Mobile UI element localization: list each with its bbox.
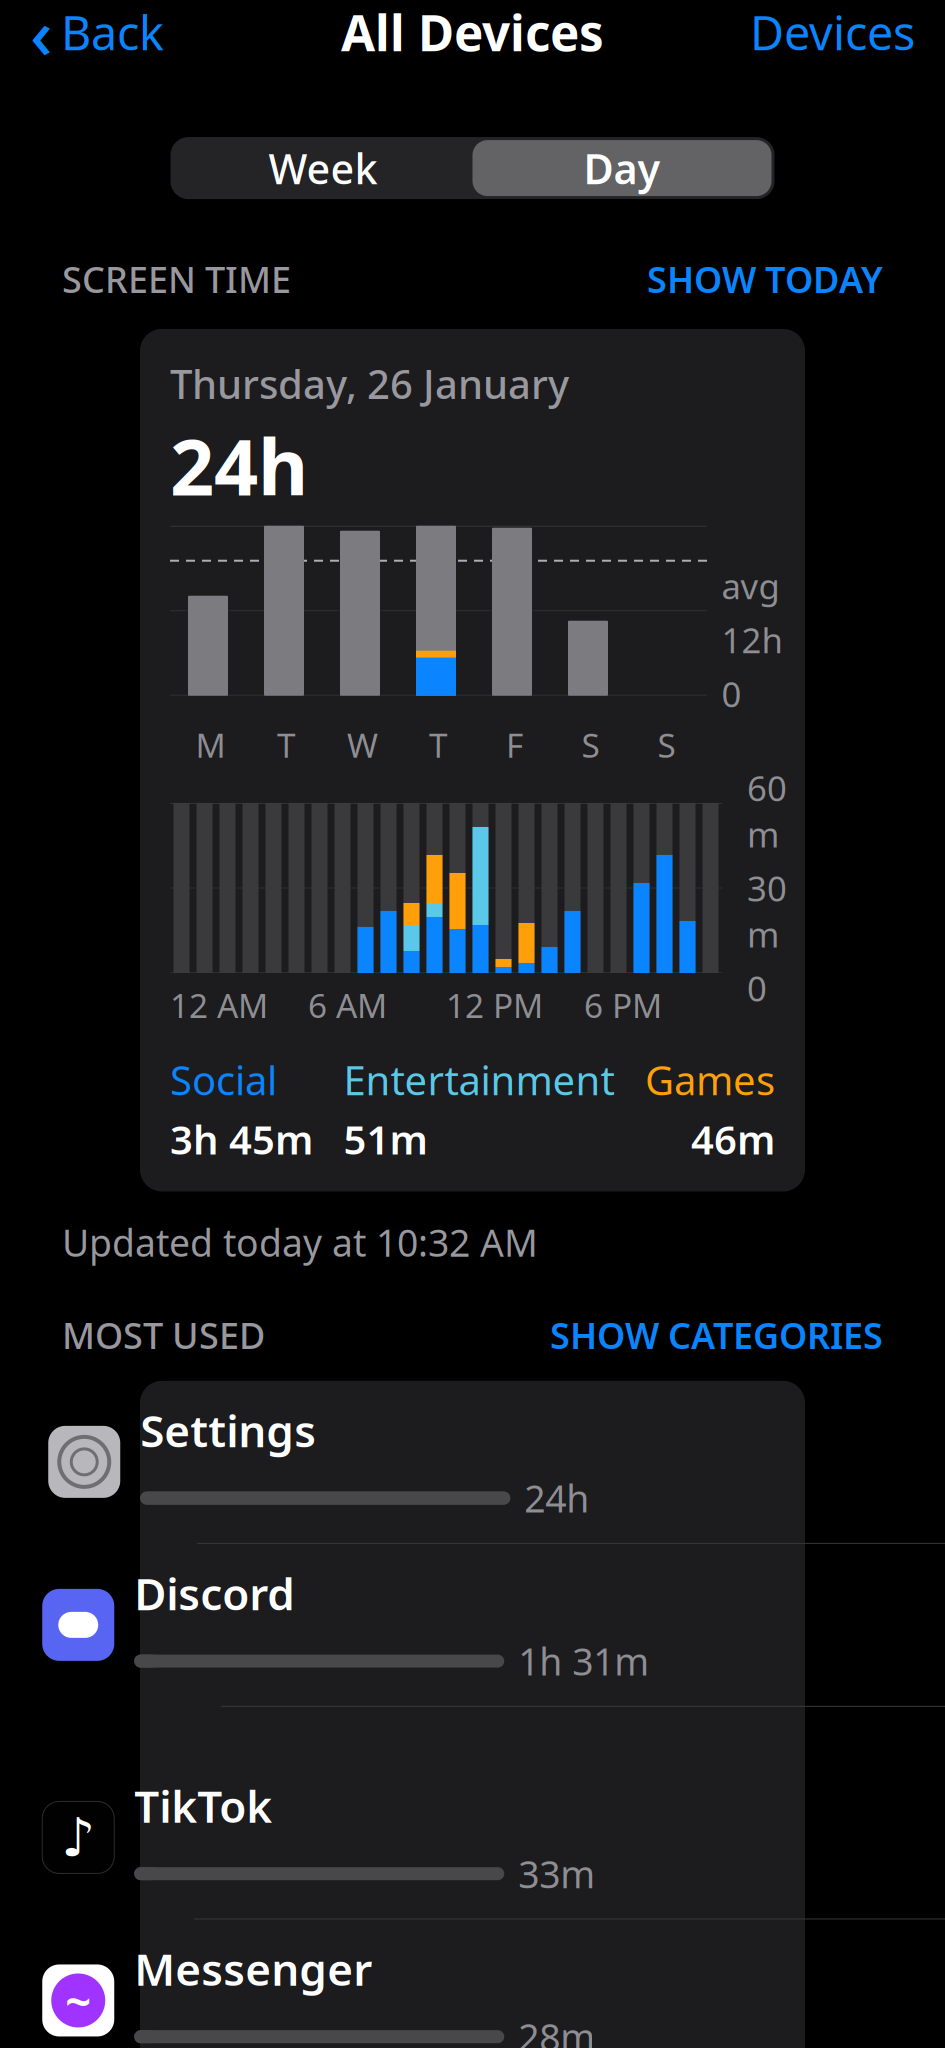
staticText: Games bbox=[645, 1053, 775, 1106]
staticText: 0 bbox=[721, 671, 741, 717]
staticText: Updated today at 10:32 AM bbox=[62, 1217, 538, 1267]
staticText: 30m bbox=[747, 865, 787, 957]
staticText: avg bbox=[721, 563, 779, 609]
staticText: 12 AM bbox=[170, 983, 268, 1027]
staticText: S bbox=[657, 723, 675, 767]
staticText: Thursday, 26 January bbox=[170, 357, 569, 410]
staticText: ♪ bbox=[61, 1807, 95, 1868]
staticText: Entertainment bbox=[343, 1053, 614, 1106]
staticText: Settings bbox=[140, 1401, 316, 1459]
staticText: 28m bbox=[518, 2012, 595, 2048]
staticText: 51m bbox=[343, 1112, 427, 1165]
staticText: Discord bbox=[134, 1564, 295, 1622]
staticText: 33m bbox=[518, 1849, 595, 1898]
staticText: ‹ bbox=[30, 0, 53, 78]
staticText: T bbox=[277, 723, 296, 767]
staticText: SHOW TODAY bbox=[647, 255, 883, 303]
staticText: F bbox=[506, 723, 523, 767]
staticText: ~ bbox=[65, 1970, 91, 2031]
staticText: 60m bbox=[747, 765, 787, 857]
button[interactable]: Devices bbox=[742, 0, 923, 69]
staticText: 6 PM bbox=[584, 983, 662, 1027]
staticText: Devices bbox=[750, 1, 915, 63]
staticText: 12h bbox=[721, 617, 782, 663]
staticText: 6 AM bbox=[308, 983, 387, 1027]
staticText: Social bbox=[170, 1053, 277, 1106]
staticText: 0 bbox=[747, 965, 767, 1011]
staticText: All Devices bbox=[341, 0, 604, 65]
staticText: T bbox=[429, 723, 448, 767]
button[interactable]: Day bbox=[472, 140, 771, 196]
button[interactable]: Settings bbox=[26, 1381, 919, 1544]
staticText: Back bbox=[61, 1, 164, 63]
staticText: SCREEN TIME bbox=[62, 255, 291, 303]
button[interactable]: SHOW CATEGORIES bbox=[550, 1311, 883, 1359]
staticText: W bbox=[347, 723, 378, 767]
staticText: 46m bbox=[691, 1112, 775, 1165]
staticText: 12 PM bbox=[446, 983, 543, 1027]
staticText: Day bbox=[583, 141, 660, 196]
staticText: Week bbox=[268, 141, 377, 196]
staticText: S bbox=[581, 723, 599, 767]
button[interactable]: Discord bbox=[20, 1544, 925, 1756]
staticText: SHOW CATEGORIES bbox=[550, 1311, 883, 1359]
staticText: TikTok bbox=[134, 1776, 272, 1835]
staticText: MOST USED bbox=[62, 1311, 265, 1359]
button[interactable]: ‹ bbox=[22, 0, 172, 84]
staticText: 24h bbox=[524, 1473, 589, 1523]
button[interactable]: ~ bbox=[20, 1919, 925, 2048]
button[interactable]: SHOW TODAY bbox=[647, 255, 883, 303]
staticText: 24h bbox=[170, 414, 308, 517]
button[interactable]: ♪ bbox=[20, 1756, 925, 1919]
staticText: 1h 31m bbox=[518, 1636, 649, 1686]
button[interactable]: Week bbox=[173, 140, 472, 196]
staticText: Messenger bbox=[134, 1939, 372, 1998]
staticText: M bbox=[195, 723, 225, 767]
staticText: 3h 45m bbox=[170, 1112, 313, 1165]
